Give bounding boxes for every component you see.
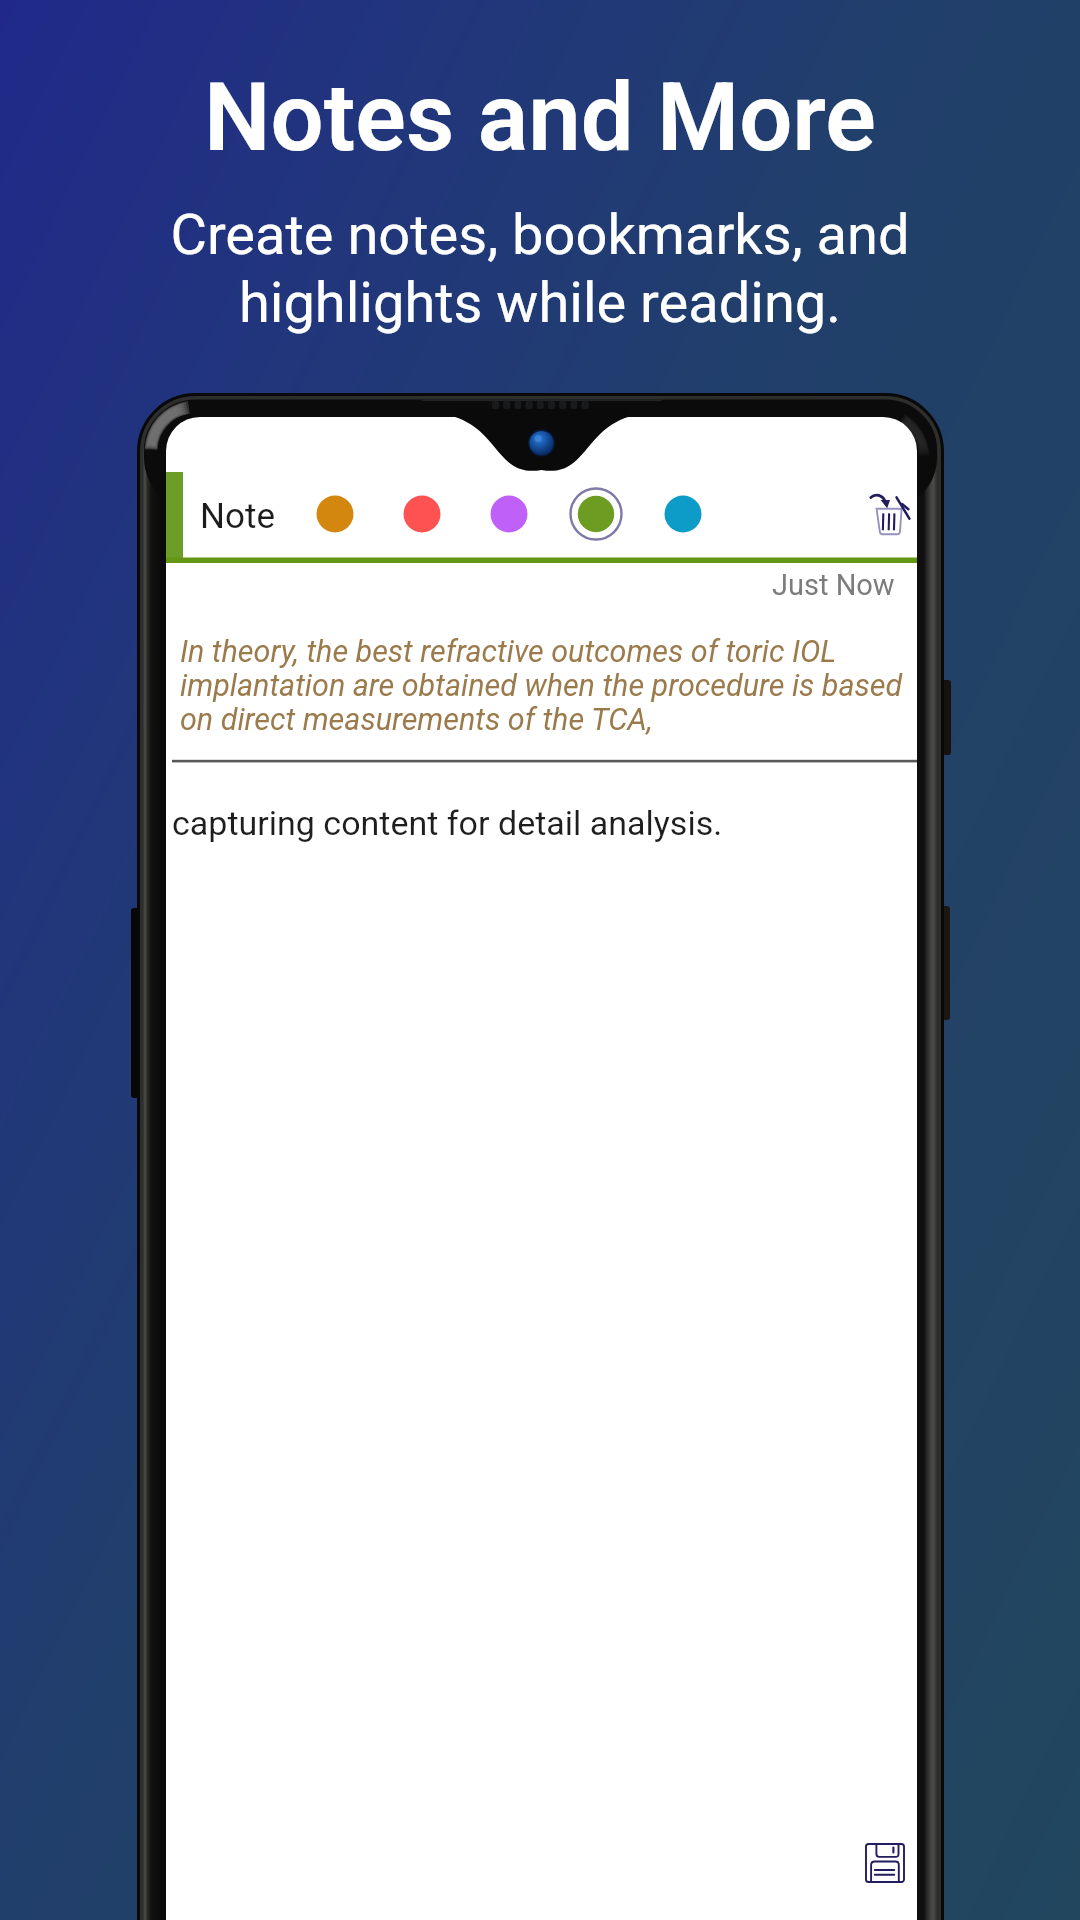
staticText: Notes and More	[0, 63, 1080, 173]
staticText: Create notes, bookmarks, and highlights …	[0, 202, 1080, 336]
button[interactable]: Delete note	[869, 493, 913, 537]
button[interactable]: Save note	[865, 1843, 905, 1883]
button[interactable]: Highlight colour	[396, 488, 448, 540]
staticText: In theory, the best refractive outcomes …	[180, 634, 917, 737]
button[interactable]: Highlight colour	[570, 488, 622, 540]
staticText: Just Now	[772, 568, 895, 602]
staticText: Note	[200, 496, 275, 537]
button[interactable]: Highlight colour	[657, 488, 709, 540]
button[interactable]: Highlight colour	[309, 488, 361, 540]
staticText: capturing content for detail analysis.	[172, 803, 723, 843]
button[interactable]: Highlight colour	[483, 488, 535, 540]
